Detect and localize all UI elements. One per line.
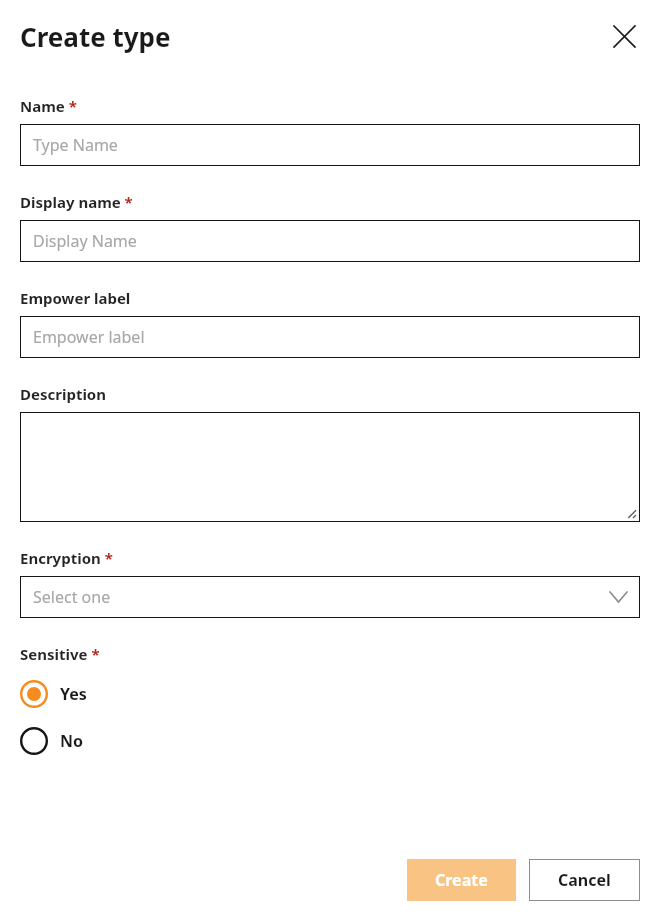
staticText: Type Name [33,134,118,156]
staticText: Name * [20,96,77,116]
staticText: Cancel [558,869,611,891]
button[interactable]: Create [407,859,516,901]
staticText: Yes [60,683,87,705]
staticText: Create type [20,19,171,54]
staticText: Empower label [33,326,145,348]
staticText: Empower label [20,288,131,308]
button[interactable]: Display Name [20,220,640,262]
staticText: Description [20,384,106,404]
staticText: Create [435,869,488,891]
staticText: Display name * [20,192,133,212]
button[interactable]: Close [608,20,640,52]
staticText: No [60,730,84,752]
staticText: Encryption * [20,548,113,568]
staticText: Sensitive * [20,644,100,664]
button[interactable] [20,412,640,522]
button[interactable]: Empower label [20,316,640,358]
button[interactable]: Cancel [529,859,640,901]
button[interactable]: Yes [20,676,640,712]
button[interactable]: Select one [20,576,640,618]
staticText: Select one [33,586,111,608]
button[interactable]: Type Name [20,124,640,166]
staticText: Display Name [33,230,137,252]
button[interactable]: No [20,723,640,759]
